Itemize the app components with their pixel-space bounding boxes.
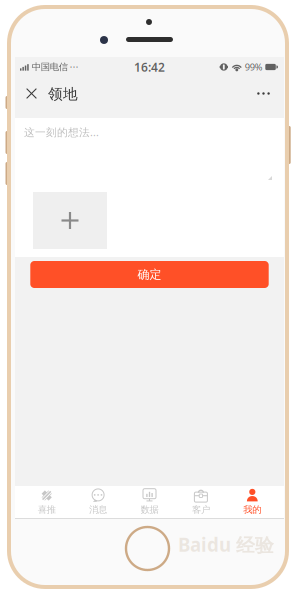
staticText: ··· [70, 61, 79, 73]
staticText: 喜推 [38, 504, 56, 515]
button[interactable]: 数据 [124, 486, 175, 518]
staticText: 99% [245, 61, 263, 73]
staticText: 这一刻的想法... [24, 125, 99, 139]
staticText: 领地 [48, 85, 78, 103]
staticText: 中国电信 [32, 61, 68, 73]
button[interactable]: More [247, 77, 280, 110]
button[interactable]: 客户 [175, 486, 227, 518]
button[interactable]: 我的 [227, 486, 278, 518]
staticText: 确定 [137, 267, 161, 282]
button[interactable]: 确定 [30, 261, 269, 288]
button[interactable]: 消息 [72, 486, 124, 518]
button[interactable]: Add photo [33, 192, 107, 249]
staticText: 16:42 [134, 59, 165, 75]
button[interactable]: Close [15, 77, 48, 110]
staticText: 我的 [243, 504, 261, 515]
staticText: 客户 [192, 504, 210, 515]
staticText: 数据 [140, 504, 158, 515]
staticText: 消息 [89, 504, 107, 515]
staticText: Baidu 经验 [178, 532, 274, 557]
button[interactable]: 喜推 [21, 486, 72, 518]
